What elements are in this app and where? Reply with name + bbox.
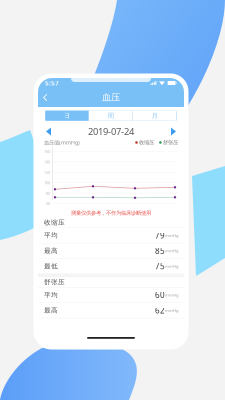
staticText: 测量仅供参考，不作为临床诊断使用 [71,210,151,216]
staticText: 62 [155,305,165,316]
staticText: 平均 [44,231,58,239]
staticText: 79 [155,230,165,241]
staticText: 平均 [44,291,58,299]
staticText: 收缩压 [139,139,154,146]
button[interactable]: 最高 [38,243,184,259]
staticText: 2019-07-24 [88,125,134,138]
staticText: mmHg [165,263,178,269]
staticText: 60 [46,201,50,206]
button[interactable]: 最高 [38,303,184,318]
button[interactable]: 平均 [38,228,184,243]
staticText: 60 [155,290,165,300]
staticText: mmHg [165,248,178,253]
staticText: mmHg [165,308,178,313]
staticText: 最高 [44,247,58,255]
button[interactable]: 最低 [38,259,184,274]
staticText: 5:57 [45,79,59,87]
staticText: 75 [155,261,165,271]
staticText: 100 [44,180,50,185]
staticText: mmHg [165,292,178,298]
button[interactable]: 平均 [38,287,184,303]
staticText: 160 [44,149,50,154]
staticText: 140 [44,159,50,164]
button[interactable]: 周 [89,110,133,121]
staticText: 血压 [102,92,120,103]
button[interactable]: Back [38,88,52,107]
staticText: 最高 [44,306,58,314]
staticText: 周 [107,112,114,120]
button[interactable]: 日 [45,110,89,121]
staticText: 日 [63,112,70,120]
button[interactable]: 月 [133,110,177,121]
button[interactable]: Previous day [42,123,55,139]
staticText: 月 [151,112,158,120]
button[interactable]: Next day [167,123,180,139]
staticText: 舒张压 [44,278,65,286]
staticText: 最低 [44,262,58,270]
staticText: 收缩压 [44,218,65,227]
staticText: mmHg [165,233,178,238]
staticText: 80 [46,190,50,196]
staticText: 血压值(mmHg) [44,139,80,146]
staticText: 舒张压 [163,139,178,146]
staticText: 120 [44,170,50,175]
staticText: 85 [155,245,165,256]
